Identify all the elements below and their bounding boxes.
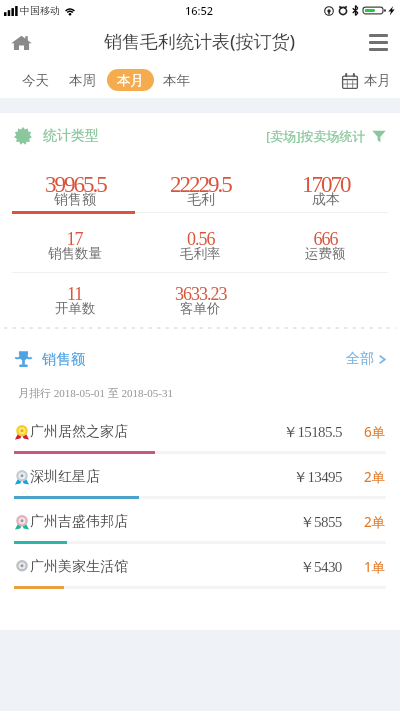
button[interactable]: 22229.5: [138, 172, 263, 209]
staticText: 毛利率: [180, 245, 221, 262]
staticText: 成本: [312, 191, 340, 209]
button[interactable]: 3633.23: [138, 284, 263, 317]
staticText: ￥5430: [300, 558, 342, 577]
staticText: 2单: [364, 468, 386, 486]
staticText: 2单: [364, 513, 386, 531]
staticText: 客单价: [180, 300, 221, 317]
staticText: 销售额: [54, 191, 96, 209]
button[interactable]: 17070: [263, 172, 388, 209]
staticText: 运费额: [305, 245, 346, 262]
staticText: 广州居然之家店: [30, 423, 128, 441]
staticText: 统计类型: [43, 127, 99, 145]
button[interactable]: 广州吉盛伟邦店: [0, 509, 400, 554]
staticText: 17: [67, 229, 83, 249]
staticText: 本月: [117, 72, 144, 89]
button[interactable]: 0.56: [138, 229, 263, 262]
staticText: 毛利: [187, 191, 215, 209]
staticText: 深圳红星店: [30, 468, 100, 486]
button[interactable]: 本月: [340, 69, 393, 92]
staticText: 666: [314, 229, 338, 249]
staticText: 22229.5: [170, 172, 231, 197]
button[interactable]: 深圳红星店: [0, 464, 400, 509]
button[interactable]: 本月: [107, 69, 154, 91]
button[interactable]: 11: [12, 284, 138, 317]
staticText: 本周: [69, 72, 96, 89]
staticText: 月排行 2018-05-01 至 2018-05-31: [18, 386, 173, 400]
button[interactable]: 666: [263, 229, 388, 262]
staticText: 广州美家生活馆: [30, 558, 128, 576]
button[interactable]: Home: [5, 26, 37, 58]
staticText: 开单数: [55, 300, 96, 317]
staticText: ￥15185.5: [283, 423, 342, 442]
button[interactable]: 本年: [163, 69, 190, 91]
staticText: 中国移动: [20, 4, 60, 17]
button[interactable]: 39965.5: [12, 172, 138, 209]
staticText: [卖场]按卖场统计: [266, 127, 366, 145]
staticText: 3633.23: [175, 284, 227, 304]
button[interactable]: 本周: [69, 69, 96, 91]
button[interactable]: Menu: [362, 26, 394, 58]
button[interactable]: 广州美家生活馆: [0, 554, 400, 599]
button[interactable]: 17: [12, 229, 138, 262]
staticText: 11: [67, 284, 83, 304]
button[interactable]: 广州居然之家店: [0, 419, 400, 464]
button[interactable]: [卖场]按卖场统计: [264, 125, 388, 147]
staticText: 广州吉盛伟邦店: [30, 513, 128, 531]
button[interactable]: 今天: [22, 69, 49, 91]
staticText: 39965.5: [45, 172, 106, 197]
staticText: 今天: [22, 72, 49, 89]
staticText: 本年: [163, 72, 190, 89]
staticText: 1单: [364, 558, 386, 576]
staticText: 销售额: [42, 350, 86, 368]
staticText: 6单: [364, 423, 386, 441]
button[interactable]: 全部: [344, 348, 388, 370]
staticText: 本月: [364, 72, 391, 89]
staticText: 16:52: [185, 3, 214, 18]
staticText: 全部: [346, 350, 374, 368]
staticText: 17070: [302, 172, 350, 197]
staticText: ￥5855: [300, 513, 342, 532]
staticText: 0.56: [187, 229, 215, 249]
staticText: 销售毛利统计表(按订货): [104, 29, 296, 54]
staticText: 销售数量: [48, 245, 102, 262]
staticText: ￥13495: [293, 468, 342, 487]
